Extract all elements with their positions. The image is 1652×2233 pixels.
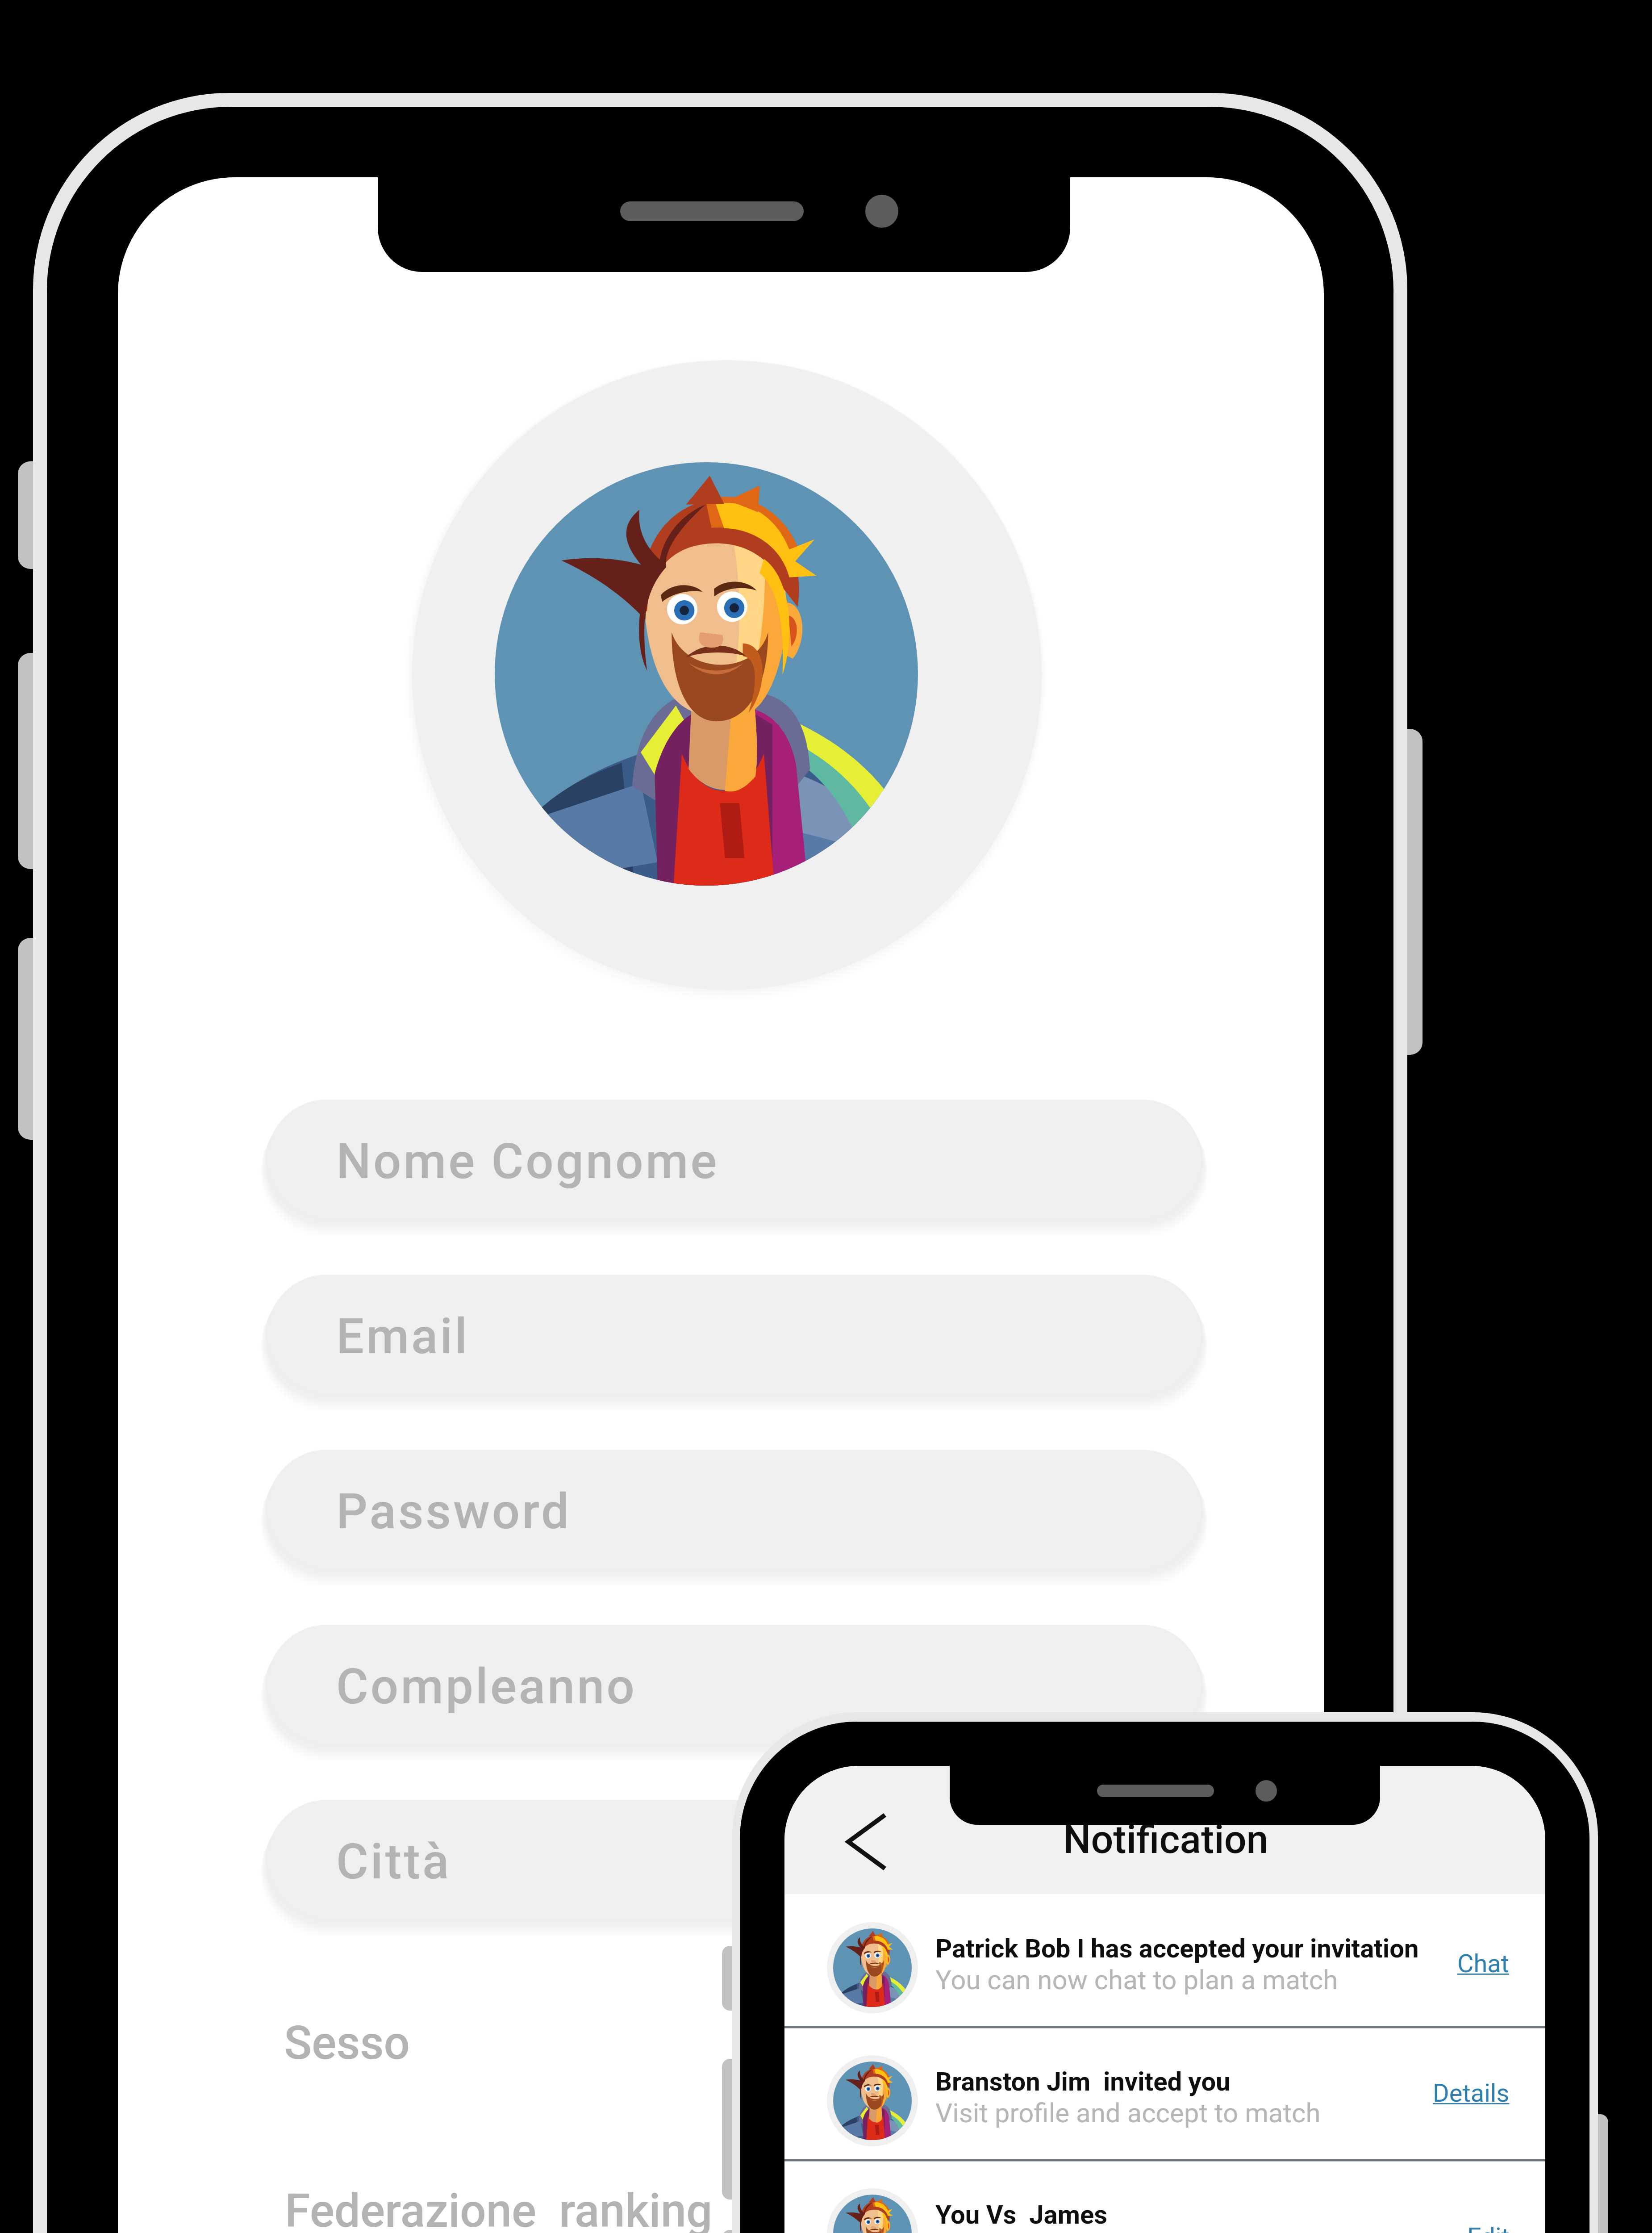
button[interactable]: Compleanno xyxy=(267,1625,1201,1744)
staticText: Chat xyxy=(1457,1949,1510,1978)
staticText: Federazione ranking xyxy=(285,2184,713,2233)
button[interactable]: Edit xyxy=(1467,2222,1510,2233)
staticText: Details xyxy=(1433,2078,1510,2108)
button[interactable]: Città xyxy=(267,1800,1201,1919)
button[interactable]: Chat xyxy=(1457,1949,1510,1978)
staticText: You can now chat to plan a match xyxy=(935,1964,1338,1995)
staticText: Città xyxy=(336,1833,451,1890)
staticText: Notification xyxy=(1063,1816,1268,1862)
button[interactable]: Patrick Bob I has accepted your invitati… xyxy=(784,1894,1545,2027)
button[interactable]: Profile photo xyxy=(412,360,1042,990)
staticText: Sesso xyxy=(284,2016,410,2070)
button[interactable]: Branston Jim invited you xyxy=(784,2027,1545,2160)
button[interactable]: You Vs James xyxy=(784,2160,1545,2233)
staticText: Email xyxy=(336,1308,470,1365)
staticText: You Vs James xyxy=(935,2200,1108,2230)
button[interactable]: Email xyxy=(267,1275,1201,1394)
staticText: Password xyxy=(336,1483,572,1540)
button[interactable]: Details xyxy=(1433,2078,1510,2108)
staticText: Compleanno xyxy=(336,1658,637,1715)
button[interactable]: Password xyxy=(267,1450,1201,1569)
button[interactable]: Back xyxy=(842,1814,896,1870)
staticText: Nome Cognome xyxy=(336,1133,719,1190)
staticText: Edit xyxy=(1467,2222,1510,2233)
staticText: Patrick Bob I has accepted your invitati… xyxy=(935,1933,1419,1964)
button[interactable]: Nome Cognome xyxy=(267,1100,1201,1219)
staticText: Visit profile and accept to match xyxy=(935,2097,1321,2128)
staticText: Branston Jim invited you xyxy=(935,2066,1231,2097)
